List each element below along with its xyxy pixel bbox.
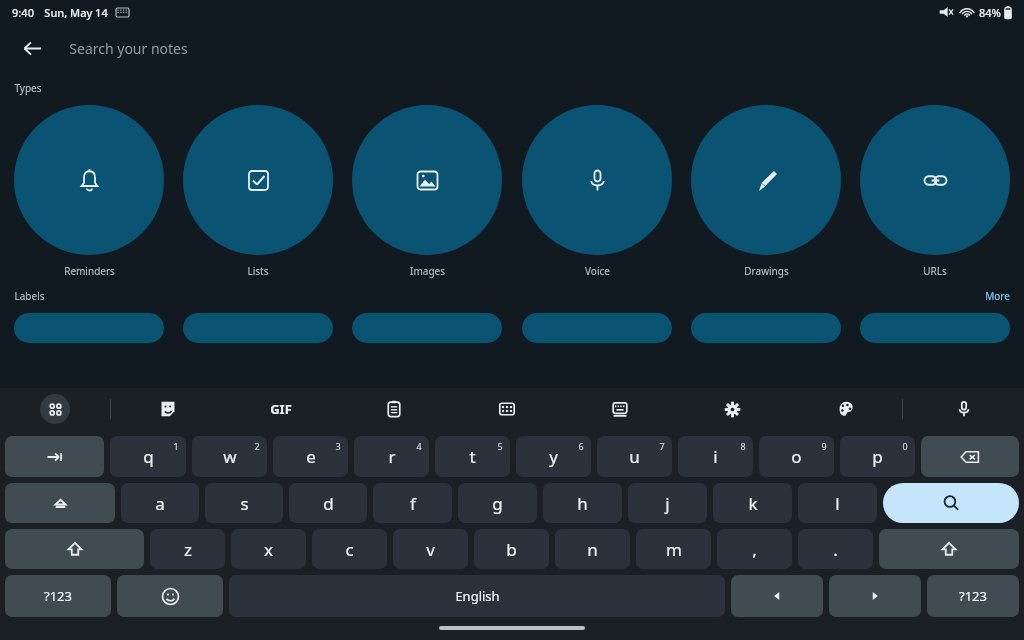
button[interactable]: Emoji [117, 575, 223, 617]
button[interactable]: Back [14, 30, 50, 66]
button[interactable]: Back [0, 24, 1024, 72]
button[interactable]: g [458, 483, 537, 523]
staticText: URLs [923, 264, 947, 278]
button[interactable]: m [636, 529, 711, 569]
button[interactable]: GIF [224, 388, 337, 430]
staticText: Reminders [64, 264, 115, 278]
staticText: f [410, 492, 416, 515]
staticText: t [469, 445, 476, 468]
button[interactable]: x [231, 529, 306, 569]
staticText: 84% [979, 5, 1001, 20]
staticText: m [666, 538, 682, 561]
button[interactable]: All tools [40, 394, 70, 424]
button[interactable]: h [543, 483, 622, 523]
button[interactable]: o [759, 436, 834, 477]
button[interactable]: Emoji sticker [111, 388, 224, 430]
staticText: g [492, 492, 503, 515]
button[interactable] [183, 313, 333, 343]
staticText: GIF [270, 400, 292, 418]
staticText: , [752, 538, 757, 561]
button[interactable]: English [229, 575, 725, 617]
button[interactable]: Move right [829, 575, 921, 617]
button[interactable] [691, 313, 841, 343]
button[interactable]: Voice [517, 105, 677, 278]
button[interactable]: l [798, 483, 877, 523]
button[interactable]: i [678, 436, 753, 477]
staticText: Images [410, 264, 445, 278]
staticText: r [388, 445, 396, 468]
staticText: Voice [585, 264, 610, 278]
staticText: w [223, 445, 237, 468]
button[interactable]: p [840, 436, 915, 477]
button[interactable]: b [474, 529, 549, 569]
staticText: Drawings [744, 264, 789, 278]
button[interactable]: More [985, 289, 1010, 303]
staticText: Types [14, 81, 42, 95]
button[interactable]: r [354, 436, 429, 477]
staticText: a [155, 492, 165, 515]
button[interactable]: Move left [731, 575, 823, 617]
button[interactable]: Drawings [686, 105, 846, 278]
button[interactable]: Images [347, 105, 507, 278]
button[interactable]: Delete [921, 436, 1019, 477]
button[interactable]: s [205, 483, 283, 523]
button[interactable]: a [121, 483, 199, 523]
button[interactable]: j [628, 483, 707, 523]
staticText: e [306, 445, 316, 468]
staticText: 7 [659, 440, 665, 452]
staticText: 9:40 [12, 5, 34, 20]
staticText: Sun, May 14 [44, 5, 108, 20]
staticText: k [748, 492, 758, 515]
button[interactable]: , [717, 529, 792, 569]
button[interactable]: t [435, 436, 510, 477]
button[interactable]: . [798, 529, 873, 569]
staticText: Labels [14, 289, 45, 303]
button[interactable]: Reminders [9, 105, 169, 278]
button[interactable]: ?123 [5, 575, 111, 617]
staticText: 1 [173, 440, 179, 452]
button[interactable] [522, 313, 672, 343]
staticText: x [264, 538, 273, 561]
button[interactable]: Theme [789, 388, 902, 430]
staticText: More [985, 289, 1010, 303]
staticText: 2 [254, 440, 260, 452]
staticText: 8 [740, 440, 746, 452]
button[interactable]: f [373, 483, 452, 523]
button[interactable]: q [110, 436, 186, 477]
staticText: l [835, 492, 840, 515]
button[interactable]: Caps lock [5, 483, 115, 523]
staticText: 0 [902, 440, 908, 452]
button[interactable]: Clipboard [337, 388, 450, 430]
button[interactable]: Shift [879, 529, 1019, 569]
button[interactable]: Voice input [947, 392, 981, 426]
button[interactable]: Tab [5, 436, 104, 477]
button[interactable]: Lists [178, 105, 338, 278]
staticText: ?123 [44, 587, 72, 605]
staticText: q [143, 445, 154, 468]
button[interactable]: n [555, 529, 630, 569]
button[interactable]: Numbers [450, 388, 563, 430]
button[interactable]: k [713, 483, 792, 523]
button[interactable]: d [289, 483, 367, 523]
staticText: n [587, 538, 598, 561]
button[interactable]: URLs [855, 105, 1015, 278]
staticText: English [455, 587, 500, 605]
button[interactable]: Search [883, 483, 1019, 523]
button[interactable]: c [312, 529, 387, 569]
button[interactable]: e [273, 436, 348, 477]
button[interactable] [352, 313, 502, 343]
staticText: Lists [247, 264, 269, 278]
button[interactable]: v [393, 529, 468, 569]
button[interactable]: w [192, 436, 267, 477]
button[interactable] [860, 313, 1010, 343]
button[interactable]: u [597, 436, 672, 477]
button[interactable]: Shift [5, 529, 144, 569]
button[interactable]: y [516, 436, 591, 477]
staticText: 3 [335, 440, 341, 452]
button[interactable] [14, 313, 164, 343]
button[interactable]: z [150, 529, 225, 569]
button[interactable]: ?123 [927, 575, 1019, 617]
button[interactable]: One-handed [563, 388, 676, 430]
staticText: p [872, 445, 883, 468]
button[interactable]: Settings [676, 388, 789, 430]
